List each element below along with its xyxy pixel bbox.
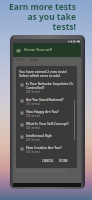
staticText: Are You Co-Dependent? — [16, 150, 56, 155]
button[interactable]: Intellectual Style — [16, 132, 77, 144]
staticText: Revised Codependency Assessment — [16, 71, 67, 75]
staticText: (25 items) — [26, 150, 40, 154]
staticText: Revised Codependency Assessment — [16, 85, 67, 89]
staticText: Are You Good National? — [26, 97, 64, 102]
staticText: Intellectual Style — [26, 133, 53, 138]
staticText: Are You Co-Dependent? — [16, 164, 56, 169]
staticText: MINE — [30, 58, 38, 62]
button[interactable]: What Is Your Self-Concept? — [16, 120, 77, 132]
staticText: DONE — [59, 159, 68, 163]
staticText: You have earned 2 new tests! Select whic… — [19, 69, 67, 78]
staticText: Are You Co-Dependent? — [16, 94, 56, 99]
staticText: Revised Codependency Assessment — [16, 127, 67, 131]
staticText: (32 items) — [26, 114, 40, 118]
staticText: Are You Co-Dependent? — [16, 136, 56, 141]
staticText: Are You Co-Dependent? — [16, 122, 56, 127]
staticText: Revised Codependency Assessment — [16, 99, 67, 103]
staticText: (30 items) — [26, 102, 40, 106]
staticText: Are You Co-Dependent? — [16, 108, 56, 113]
staticText: Are You Co-Dependent? — [16, 66, 56, 71]
button[interactable]: TESTS — [13, 57, 27, 63]
button[interactable]: Are You Good National? — [16, 96, 77, 108]
staticText: (30 items) — [26, 90, 40, 94]
staticText: How Creative Are You? — [26, 145, 62, 150]
staticText: CANCEL — [42, 159, 54, 163]
staticText: How Happy Are You? — [26, 109, 59, 114]
staticText: Is Your Behavior Impulsive Or Controlled… — [26, 81, 74, 90]
button[interactable]: How Creative Are You? — [16, 144, 77, 156]
staticText: Revised Codependency Assessment — [16, 113, 67, 117]
staticText: Are You Co-Dependent? — [16, 80, 56, 85]
button[interactable]: Navigation menu — [16, 48, 21, 53]
button[interactable]: DONE — [57, 158, 70, 164]
button[interactable]: Is Your Behavior Impulsive Or Controlled… — [16, 80, 77, 96]
staticText: (28 items) — [26, 126, 40, 130]
staticText: What Is Your Self-Concept? — [26, 121, 69, 126]
staticText: Know Yourself — [24, 47, 52, 53]
staticText: (29 items) — [26, 138, 40, 142]
button[interactable]: How Happy Are You? — [16, 108, 77, 120]
button[interactable]: CANCEL — [40, 158, 56, 164]
staticText: Earn more tests as you take tests! — [2, 1, 76, 32]
button[interactable]: MINE — [27, 57, 41, 63]
staticText: Revised Codependency Assessment — [16, 169, 67, 173]
staticText: TESTS — [16, 58, 25, 62]
